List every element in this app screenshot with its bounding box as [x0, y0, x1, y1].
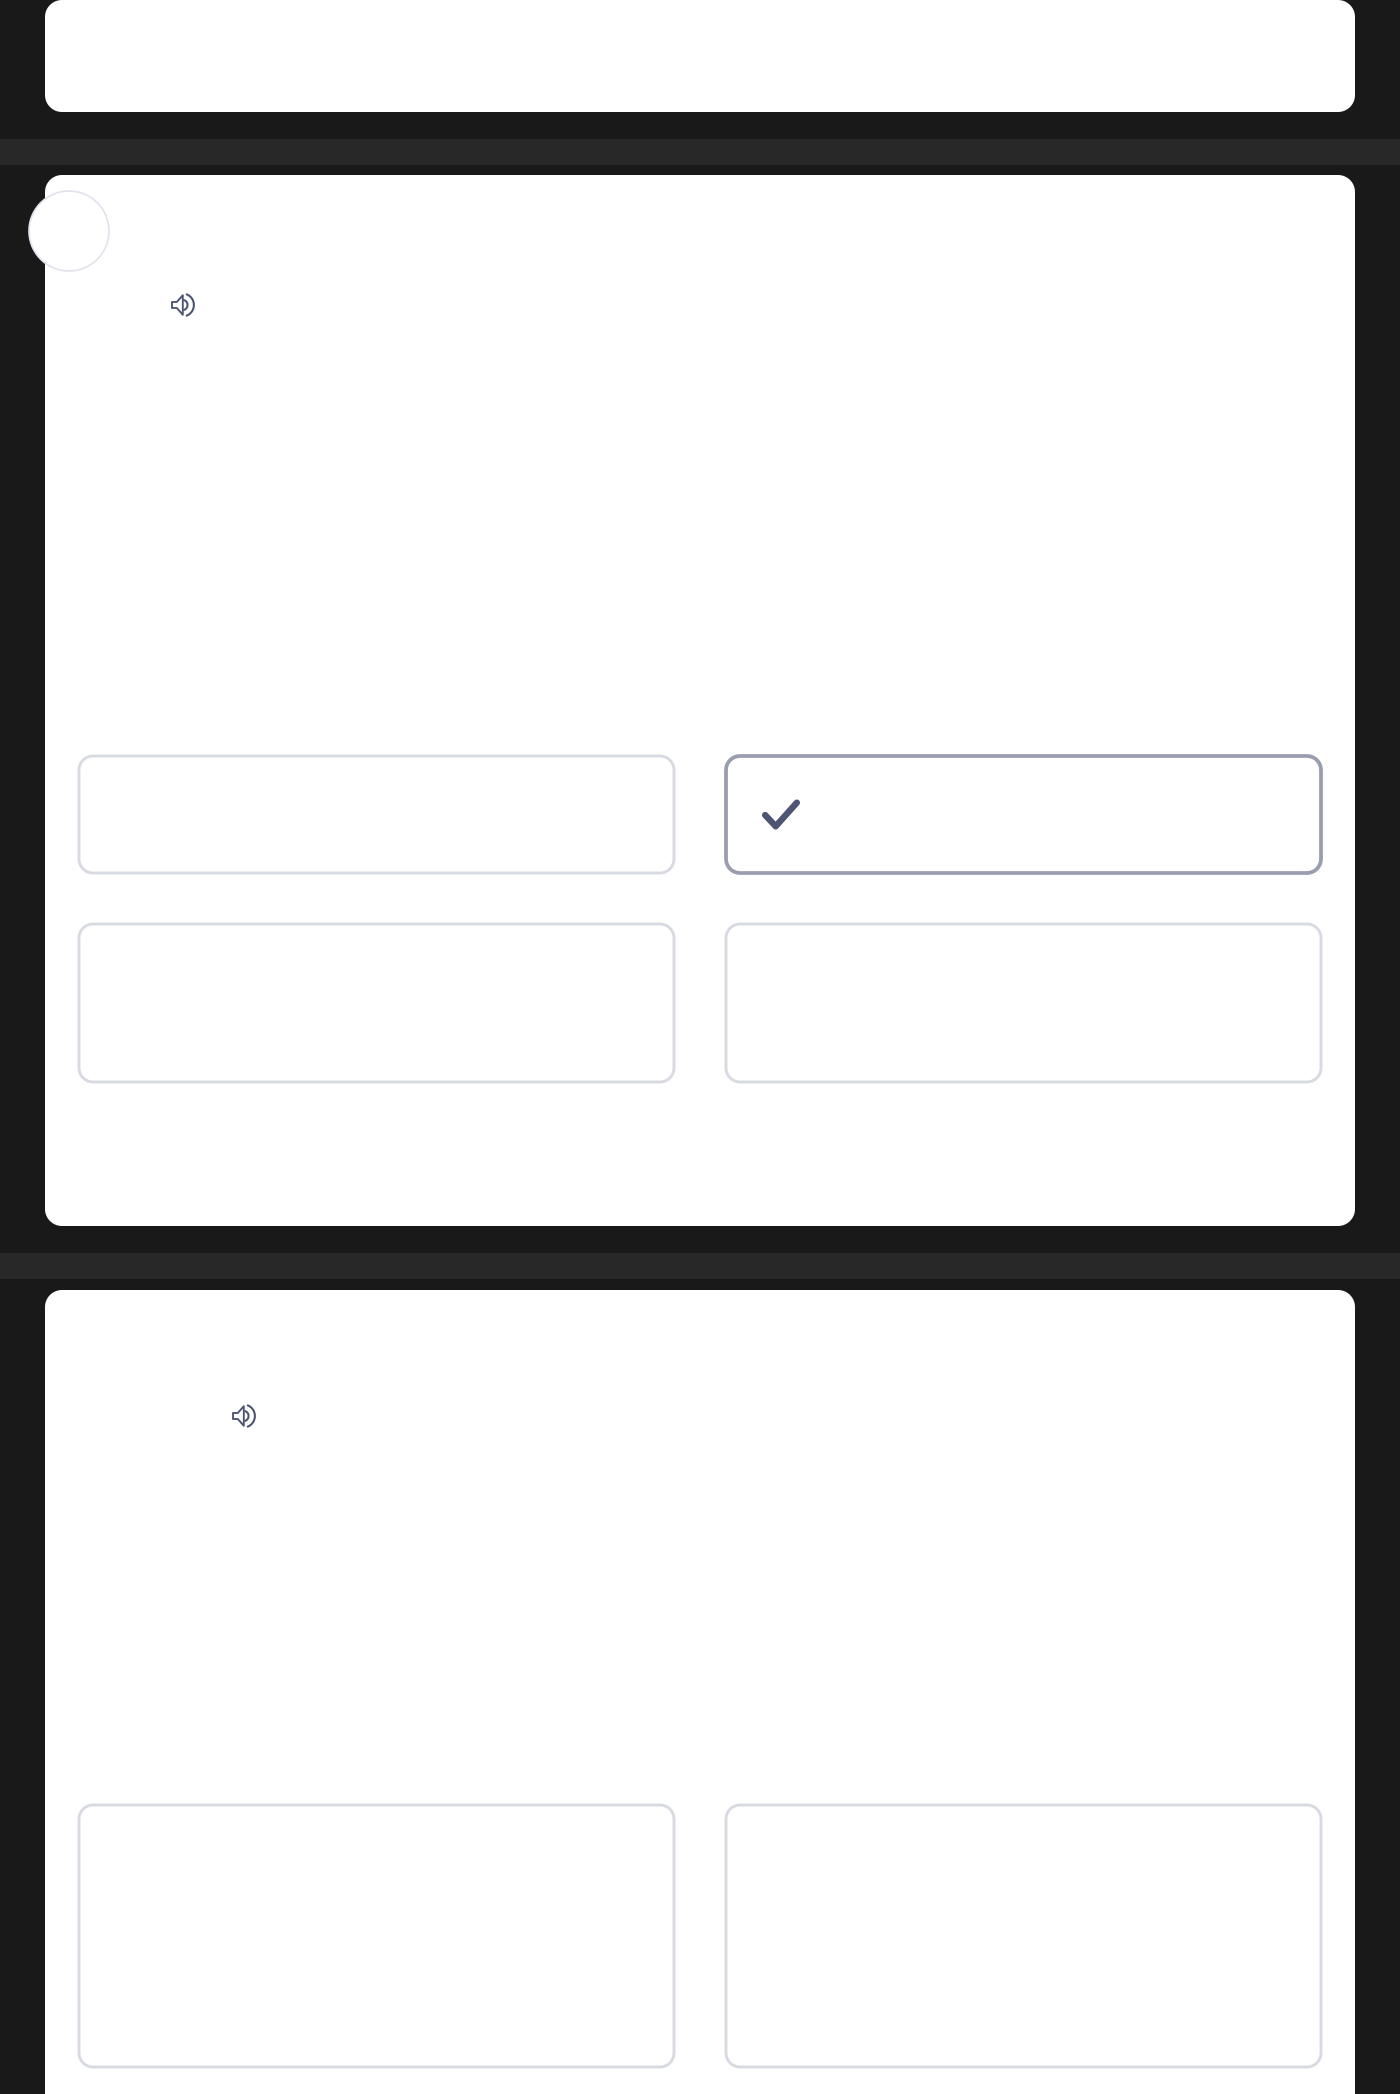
button[interactable]: Answer option [726, 1805, 1321, 2067]
button[interactable]: Play audio [232, 1404, 256, 1428]
button[interactable]: Answer option [79, 924, 674, 1082]
button[interactable]: Answer option [726, 924, 1321, 1082]
button[interactable]: Answer option [79, 1805, 674, 2067]
button[interactable]: Selected answer [726, 756, 1321, 873]
button[interactable]: Answer option [79, 756, 674, 873]
button[interactable]: Play audio [171, 293, 195, 317]
